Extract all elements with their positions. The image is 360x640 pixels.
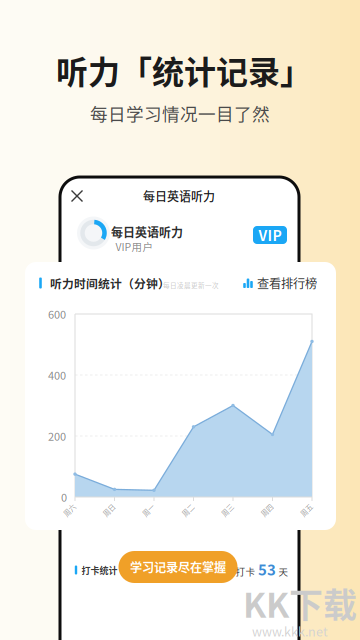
staticText: 周日 <box>102 505 116 515</box>
staticText: 学习记录尽在掌握 <box>130 558 226 576</box>
staticText: 周二 <box>181 505 195 515</box>
staticText: 天 <box>278 564 288 578</box>
staticText: 200 <box>48 428 66 444</box>
staticText: 周五 <box>299 505 313 515</box>
staticText: www.kkk.net <box>252 622 328 640</box>
staticText: 打卡 <box>235 564 255 578</box>
staticText: 400 <box>48 367 66 383</box>
staticText: 打卡统计 <box>81 563 117 576</box>
staticText: 每日凌晨更新一次 <box>163 280 219 290</box>
staticText: KK下载 <box>243 578 357 628</box>
button[interactable]: VIP <box>253 226 287 244</box>
staticText: 周六 <box>62 505 76 515</box>
staticText: 周三 <box>220 505 234 515</box>
staticText: 听力时间统计（分钟） <box>50 274 170 292</box>
staticText: 每日英语听力 <box>111 223 183 241</box>
staticText: 每日英语听力 <box>143 187 215 205</box>
staticText: 听力「统计记录」 <box>56 47 312 93</box>
staticText: 周一 <box>141 505 155 515</box>
staticText: 查看排行榜 <box>257 274 317 292</box>
staticText: VIP用户 <box>115 239 153 254</box>
staticText: 每日学习情况一目了然 <box>90 100 270 126</box>
button[interactable]: 关闭 <box>63 182 90 209</box>
staticText: 53 <box>258 558 276 580</box>
button[interactable]: 查看排行榜 <box>243 274 317 292</box>
staticText: 0 <box>61 489 67 505</box>
staticText: 周四 <box>260 505 274 515</box>
staticText: VIP <box>258 225 281 245</box>
staticText: 600 <box>48 306 66 322</box>
